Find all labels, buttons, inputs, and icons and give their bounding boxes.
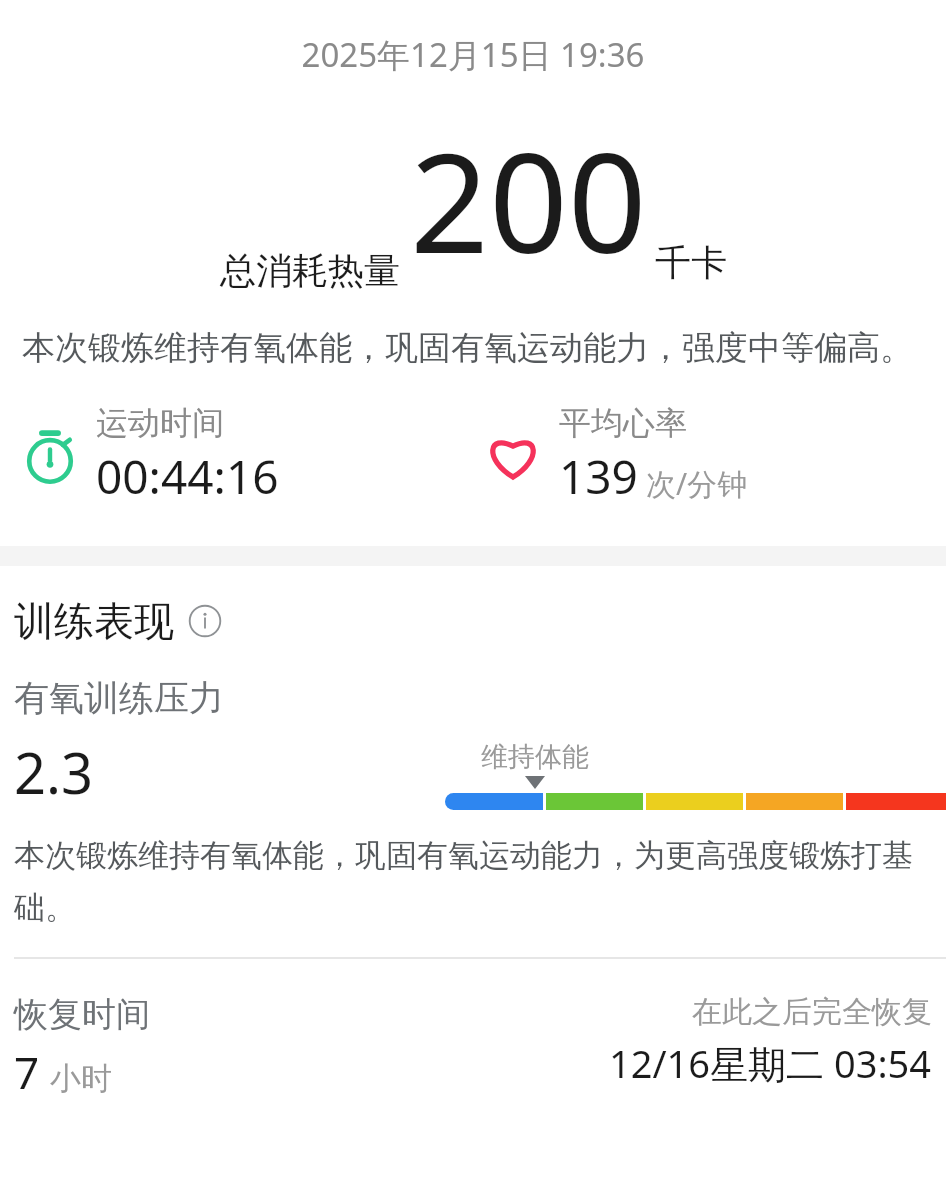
- staticText: 总消耗热量: [220, 248, 400, 293]
- staticText: 200: [410, 105, 647, 293]
- staticText: 训练表现: [14, 596, 174, 646]
- staticText: 千卡: [655, 240, 727, 285]
- staticText: 139: [559, 445, 638, 508]
- button[interactable]: 恢复时间: [0, 993, 946, 1102]
- staticText: 恢复时间: [14, 993, 150, 1036]
- staticText: 7: [14, 1042, 40, 1102]
- staticText: 在此之后完全恢复: [692, 993, 932, 1031]
- staticText: 本次锻炼维持有氧体能，巩固有氧运动能力，为更高强度锻炼打基础。: [14, 836, 932, 927]
- button[interactable]: 训练表现: [0, 596, 946, 646]
- other: Duration: [14, 420, 86, 492]
- staticText: 2.3: [14, 734, 94, 810]
- staticText: 运动时间: [96, 403, 224, 443]
- button[interactable]: Duration: [10, 403, 473, 508]
- staticText: 小时: [50, 1059, 112, 1098]
- staticText: 本次锻炼维持有氧体能，巩固有氧运动能力，强度中等偏高。: [22, 327, 924, 369]
- staticText: 平均心率: [559, 403, 687, 443]
- staticText: 维持体能: [481, 740, 589, 774]
- staticText: 有氧训练压力: [14, 676, 224, 720]
- other: Average heart rate: [477, 420, 549, 492]
- other: Info about training performance: [188, 604, 222, 638]
- staticText: 12/16星期二 03:54: [609, 1037, 932, 1089]
- button[interactable]: Average heart rate: [473, 403, 936, 508]
- staticText: 次/分钟: [646, 463, 748, 504]
- staticText: 2025年12月15日 19:36: [0, 32, 946, 77]
- staticText: 00:44:16: [96, 445, 279, 508]
